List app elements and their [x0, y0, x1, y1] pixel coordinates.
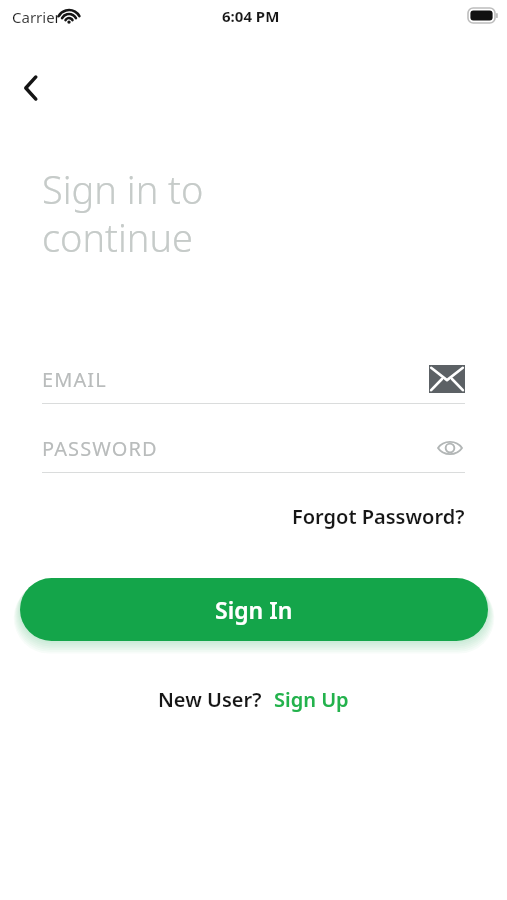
other: Email: [429, 365, 465, 393]
staticText: Carrier: [12, 7, 61, 27]
staticText: Sign In: [215, 594, 293, 625]
button[interactable]: PASSWORD: [42, 424, 465, 472]
button[interactable]: Sign In: [20, 578, 488, 641]
staticText: EMAIL: [42, 366, 107, 393]
button[interactable]: Show password: [435, 436, 465, 460]
staticText: Sign Up: [274, 686, 349, 713]
button[interactable]: Sign Up: [274, 686, 349, 713]
staticText: Sign in to continue: [42, 163, 204, 264]
button[interactable]: Back: [8, 64, 56, 112]
button[interactable]: Forgot Password?: [275, 499, 465, 533]
staticText: New User?: [158, 686, 262, 713]
staticText: Forgot Password?: [292, 503, 465, 530]
button[interactable]: EMAIL: [42, 355, 465, 403]
staticText: PASSWORD: [42, 435, 158, 462]
staticText: 6:04 PM: [222, 6, 280, 26]
